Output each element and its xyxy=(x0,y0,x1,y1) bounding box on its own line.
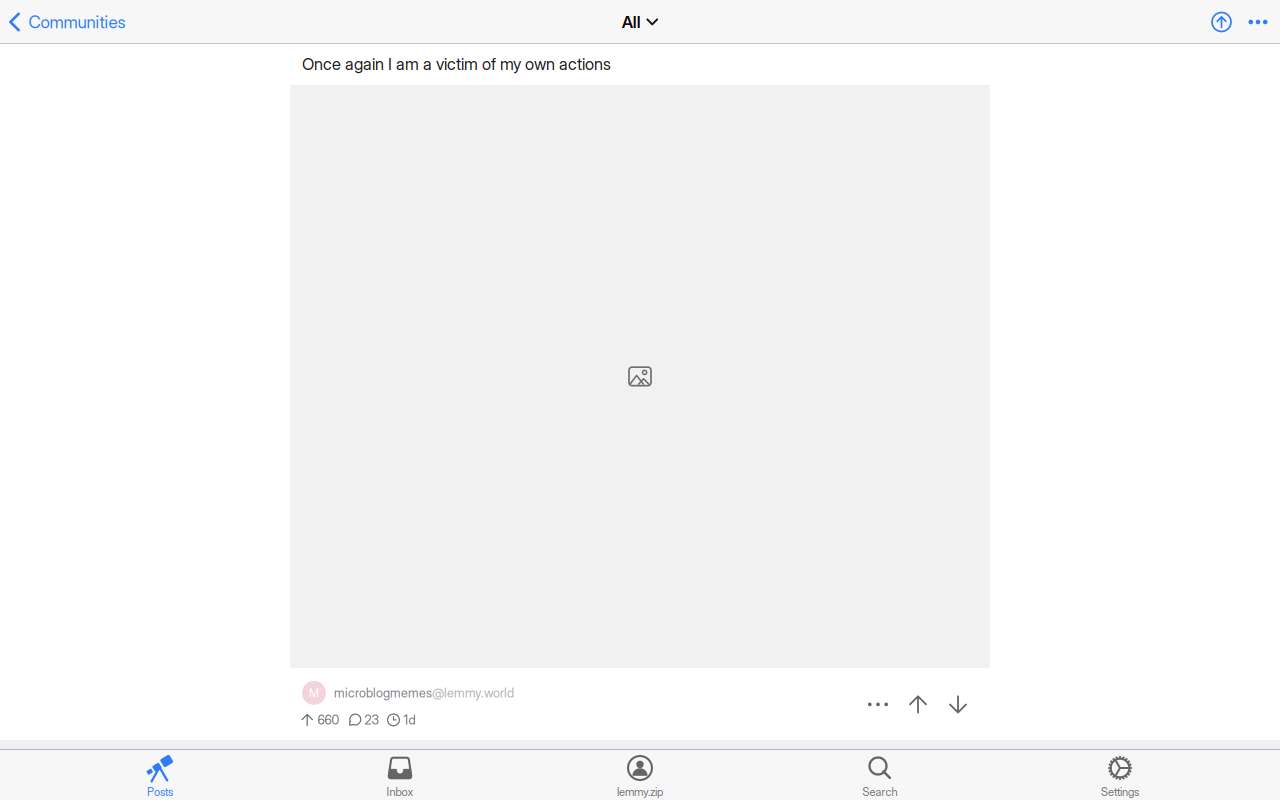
button[interactable]: More actions xyxy=(858,689,898,719)
button[interactable]: lemmy.zip xyxy=(565,750,715,800)
staticText: All xyxy=(622,12,641,32)
staticText: 23 xyxy=(365,712,380,727)
staticText: Search xyxy=(862,785,897,799)
staticText: lemmy.zip xyxy=(617,785,663,799)
button[interactable]: Inbox xyxy=(325,750,475,800)
staticText: Communities xyxy=(28,12,125,32)
button[interactable]: All xyxy=(614,0,666,43)
button[interactable]: M xyxy=(302,681,514,705)
staticText: 1d xyxy=(403,712,415,727)
button[interactable]: Search xyxy=(805,750,955,800)
button[interactable]: Communities xyxy=(0,0,133,43)
staticText: microblogmemes xyxy=(334,685,432,700)
button[interactable]: Share xyxy=(1203,0,1240,43)
staticText: Once again I am a victim of my own actio… xyxy=(302,54,611,74)
staticText: 660 xyxy=(317,712,339,727)
staticText: Settings xyxy=(1101,785,1139,799)
button[interactable]: More xyxy=(1240,0,1276,43)
button[interactable]: Posts xyxy=(85,750,235,800)
staticText: M xyxy=(309,686,319,700)
staticText: Posts xyxy=(147,785,173,799)
staticText: @lemmy.world xyxy=(432,685,514,700)
button[interactable]: Downvote xyxy=(938,689,978,719)
button[interactable]: Upvote xyxy=(898,689,938,719)
button[interactable]: Settings xyxy=(1045,750,1195,800)
staticText: Inbox xyxy=(386,785,413,799)
